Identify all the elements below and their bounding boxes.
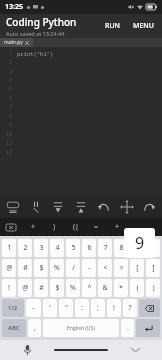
staticText: 4: [55, 243, 60, 253]
button[interactable]: Backspace: [139, 299, 160, 317]
button[interactable]: #: [34, 279, 48, 297]
staticText: -: [32, 303, 35, 313]
button[interactable]: $: [50, 279, 64, 297]
button[interactable]: @: [2, 259, 16, 277]
staticText: &: [102, 283, 108, 293]
button[interactable]: -: [26, 299, 41, 317]
button[interactable]: +: [107, 218, 128, 236]
button[interactable]: ,: [28, 319, 41, 337]
button[interactable]: #: [18, 259, 32, 277]
button[interactable]: ABC: [2, 319, 26, 337]
button[interactable]: >: [114, 259, 128, 277]
button[interactable]: (: [130, 279, 144, 297]
staticText: !: [8, 283, 10, 293]
staticText: %: [54, 263, 60, 273]
staticText: 10: [6, 131, 13, 138]
button[interactable]: (|: [65, 218, 86, 236]
staticText: 8: [119, 243, 124, 253]
staticText: $: [55, 283, 60, 293]
staticText: 6: [87, 243, 92, 253]
button[interactable]: Outdent: [71, 197, 91, 217]
button[interactable]: Indent: [48, 197, 68, 217]
staticText: 11: [6, 140, 13, 147]
button[interactable]: ?: [123, 299, 137, 317]
button[interactable]: :: [75, 299, 89, 317]
button[interactable]: [: [130, 259, 144, 277]
button[interactable]: 5: [66, 239, 80, 257]
button[interactable]: 3: [34, 239, 48, 257]
staticText: -: [88, 263, 91, 273]
button[interactable]: $: [34, 259, 48, 277]
button[interactable]: Tab: [3, 197, 23, 217]
staticText: ?: [128, 303, 132, 313]
staticText: *: [119, 283, 123, 293]
staticText: ;: [97, 303, 99, 313]
button[interactable]: +: [22, 218, 44, 236]
staticText: %: [70, 283, 76, 293]
button[interactable]: Hide keyboard: [108, 340, 162, 360]
staticText: 2: [9, 59, 13, 66]
button[interactable]: Voice input: [0, 340, 54, 360]
button[interactable]: ;: [91, 299, 105, 317]
staticText: (|: [73, 222, 79, 232]
staticText: 6: [9, 95, 13, 102]
button[interactable]: .: [121, 319, 134, 337]
button[interactable]: Undo: [94, 197, 114, 217]
staticText: 5: [9, 86, 13, 93]
button[interactable]: ): [44, 218, 65, 236]
other: Close tab: [25, 41, 29, 45]
staticText: #: [39, 283, 44, 293]
staticText: Coding Python: [6, 15, 77, 29]
staticText: ]: [152, 263, 155, 273]
staticText: 4: [9, 77, 13, 84]
button[interactable]: !: [2, 279, 16, 297]
button[interactable]: !: [107, 299, 121, 317]
staticText: 2: [23, 243, 28, 253]
button[interactable]: Pipe: [26, 197, 46, 217]
button[interactable]: MENU: [129, 18, 158, 34]
button[interactable]: main.py: [0, 38, 33, 47]
button[interactable]: =: [86, 218, 107, 236]
button[interactable]: ": [59, 299, 73, 317]
staticText: .: [127, 323, 129, 333]
button[interactable]: ': [43, 299, 57, 317]
button[interactable]: ^: [82, 279, 96, 297]
button[interactable]: -: [82, 259, 96, 277]
button[interactable]: 1: [2, 239, 16, 257]
staticText: +: [31, 222, 36, 232]
staticText: print("hi"): [17, 50, 54, 57]
button[interactable]: 1/2: [2, 299, 24, 317]
button[interactable]: /: [66, 259, 80, 277]
staticText: ": [65, 303, 68, 313]
staticText: 7: [103, 243, 108, 253]
button[interactable]: %: [66, 279, 80, 297]
staticText: @: [6, 263, 13, 273]
button[interactable]: English (US): [43, 319, 119, 337]
button[interactable]: Redo: [139, 197, 159, 217]
button[interactable]: Enter: [136, 319, 160, 337]
button[interactable]: RUN: [101, 18, 125, 34]
button[interactable]: 9: [130, 239, 144, 257]
staticText: 1: [7, 243, 12, 253]
button[interactable]: @: [18, 279, 32, 297]
button[interactable]: &: [98, 279, 112, 297]
button[interactable]: 6: [82, 239, 96, 257]
button[interactable]: ]: [146, 259, 160, 277]
button[interactable]: 7: [98, 239, 112, 257]
button[interactable]: ): [146, 279, 160, 297]
staticText: English (US): [67, 325, 95, 332]
button[interactable]: *: [114, 279, 128, 297]
button[interactable]: %: [50, 259, 64, 277]
button[interactable]: 2: [18, 239, 32, 257]
button[interactable]: <: [98, 259, 112, 277]
staticText: MENU: [133, 21, 154, 31]
button[interactable]: 4: [50, 239, 64, 257]
staticText: 9: [135, 232, 145, 254]
staticText: #: [23, 263, 28, 273]
button[interactable]: 0: [146, 239, 160, 257]
staticText: ,: [34, 323, 36, 333]
button[interactable]: Move cursor: [117, 197, 137, 217]
button[interactable]: 8: [114, 239, 128, 257]
staticText: 3: [9, 68, 13, 75]
button[interactable]: Backspace: [0, 218, 22, 236]
